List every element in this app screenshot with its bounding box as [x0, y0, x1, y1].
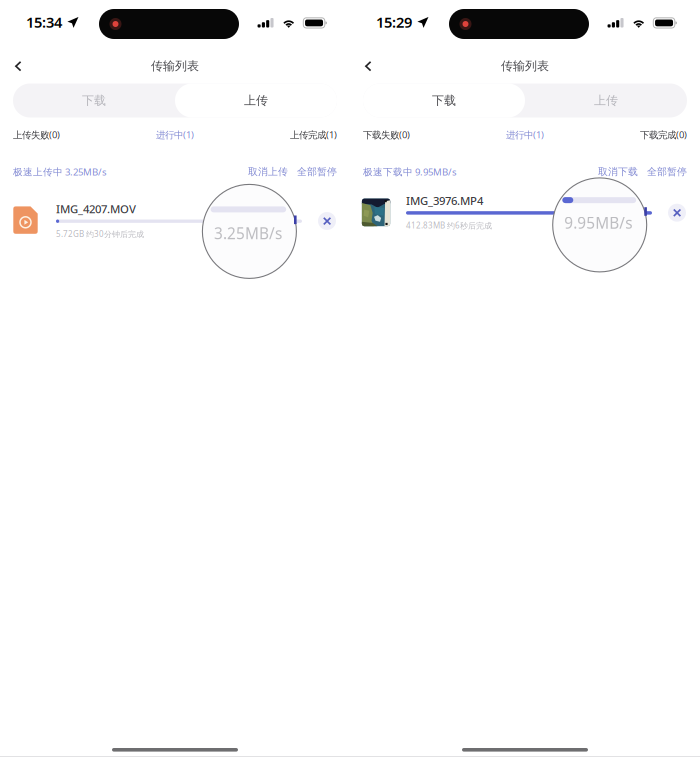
staticText: 下载 [432, 93, 456, 108]
staticText: 下载完成(0) [640, 128, 687, 141]
staticText: 下载失败(0) [363, 128, 410, 141]
staticText: IMG_3976.MP4 [406, 193, 483, 208]
button[interactable]: 下载失败(0) [363, 128, 410, 141]
button[interactable]: 下载 [13, 83, 175, 117]
button[interactable]: Cancel transfer [665, 201, 689, 225]
staticText: 上传 [244, 93, 268, 108]
staticText: 进行中(1) [506, 128, 544, 141]
button[interactable]: 进行中(1) [156, 128, 194, 141]
button[interactable]: 取消上传 [248, 165, 288, 178]
staticText: 下载 [82, 93, 106, 108]
staticText: 极速上传中 3.25MB/s [13, 165, 107, 178]
button[interactable]: Back [7, 53, 30, 79]
staticText: 传输列表 [501, 58, 549, 73]
staticText: 全部暂停 [297, 165, 337, 178]
staticText: 5.72GB 约30分钟后完成 [56, 228, 144, 239]
staticText: 进行中(1) [156, 128, 194, 141]
button[interactable]: 上传 [525, 83, 687, 117]
button[interactable]: Back [357, 53, 380, 79]
button[interactable]: 上传 [175, 83, 337, 117]
staticText: 取消上传 [248, 165, 288, 178]
staticText: 9.95MB/s [564, 212, 632, 233]
staticText: IMG_4207.MOV [56, 201, 136, 216]
staticText: 15:29 [376, 12, 412, 32]
button[interactable]: 上传完成(1) [290, 128, 337, 141]
staticText: 上传失败(0) [13, 128, 60, 141]
staticText: 全部暂停 [647, 165, 687, 178]
button[interactable]: 全部暂停 [297, 165, 337, 178]
staticText: 15:34 [26, 12, 62, 32]
button[interactable]: Cancel transfer [315, 209, 339, 233]
staticText: 取消下载 [598, 165, 638, 178]
button[interactable]: 进行中(1) [506, 128, 544, 141]
staticText: 上传 [594, 93, 618, 108]
staticText: 极速下载中 9.95MB/s [363, 165, 457, 178]
button[interactable]: 上传失败(0) [13, 128, 60, 141]
staticText: 上传完成(1) [290, 128, 337, 141]
staticText: 3.25MB/s [214, 223, 282, 244]
button[interactable]: 下载完成(0) [640, 128, 687, 141]
staticText: 412.83MB 约6秒后完成 [406, 220, 492, 231]
button[interactable]: 取消下载 [598, 165, 638, 178]
button[interactable]: 全部暂停 [647, 165, 687, 178]
staticText: 传输列表 [151, 58, 199, 73]
button[interactable]: 下载 [363, 83, 525, 117]
